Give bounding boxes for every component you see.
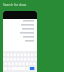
button[interactable]: Search for duas	[0, 0, 64, 11]
button[interactable]: Keyboard	[3, 51, 37, 72]
staticText: Search for duas	[3, 3, 27, 7]
